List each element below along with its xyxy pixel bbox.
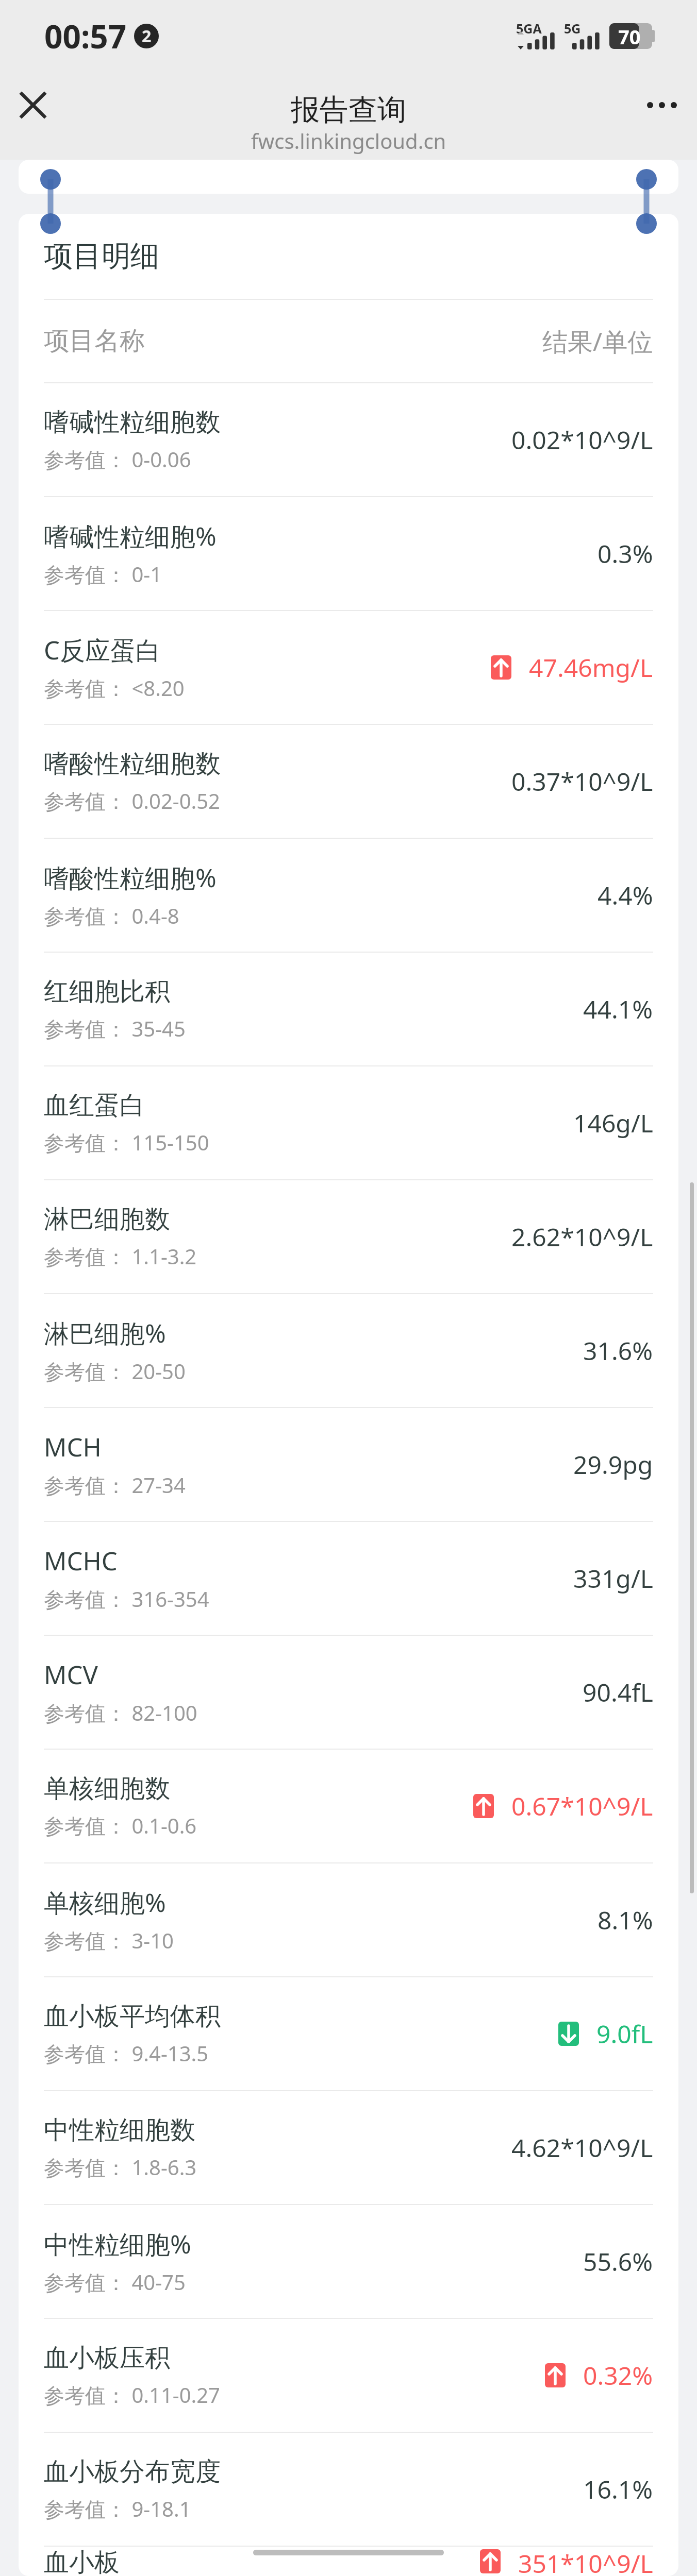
- staticText: 淋巴细胞%: [44, 1316, 166, 1350]
- button[interactable]: Close: [9, 81, 57, 129]
- staticText: 参考值： 1.8-6.3: [44, 2153, 197, 2181]
- staticText: fwcs.linkingcloud.cn: [251, 127, 446, 155]
- staticText: 中性粒细胞%: [44, 2227, 191, 2261]
- staticText: 中性粒细胞数: [44, 2114, 195, 2146]
- staticText: 参考值： 115-150: [44, 1128, 209, 1157]
- button[interactable]: More options: [638, 81, 686, 129]
- staticText: 0.32%: [583, 2359, 653, 2392]
- staticText: 血小板平均体积: [44, 2001, 221, 2032]
- staticText: 2.62*10^9/L: [511, 1220, 653, 1253]
- staticText: 报告查询: [291, 92, 406, 128]
- staticText: 嗜碱性粒细胞%: [44, 519, 217, 553]
- staticText: 31.6%: [583, 1334, 653, 1367]
- staticText: 参考值： 1.1-3.2: [44, 1242, 197, 1270]
- staticText: 参考值： 35-45: [44, 1014, 186, 1043]
- button[interactable]: 血小板: [19, 2547, 678, 2576]
- staticText: 0.3%: [598, 537, 653, 570]
- staticText: 4.62*10^9/L: [511, 2131, 653, 2164]
- staticText: 5GA: [516, 20, 542, 37]
- staticText: 参考值： 20-50: [44, 1357, 186, 1385]
- staticText: 0.67*10^9/L: [511, 1789, 653, 1823]
- button[interactable]: 中性粒细胞%: [19, 2205, 678, 2318]
- staticText: 00:57: [44, 14, 127, 58]
- staticText: 55.6%: [583, 2245, 653, 2278]
- staticText: MCHC: [44, 1544, 118, 1578]
- button[interactable]: 单核细胞数: [19, 1750, 678, 1862]
- staticText: 16.1%: [583, 2472, 653, 2506]
- button[interactable]: 血小板平均体积: [19, 1977, 678, 2090]
- staticText: 44.1%: [583, 992, 653, 1026]
- staticText: 0.37*10^9/L: [511, 765, 653, 798]
- staticText: 351*10^9/L: [518, 2547, 653, 2576]
- button[interactable]: 嗜碱性粒细胞%: [19, 497, 678, 610]
- button[interactable]: 红细胞比积: [19, 953, 678, 1065]
- staticText: 参考值： 82-100: [44, 1699, 197, 1727]
- staticText: C反应蛋白: [44, 633, 161, 667]
- staticText: 8.1%: [598, 1903, 653, 1937]
- button[interactable]: 血小板分布宽度: [19, 2433, 678, 2546]
- staticText: 70: [618, 23, 641, 49]
- staticText: 参考值： 3-10: [44, 1926, 174, 1955]
- button[interactable]: 嗜酸性粒细胞%: [19, 839, 678, 952]
- button[interactable]: 淋巴细胞%: [19, 1294, 678, 1407]
- staticText: 参考值： 0.11-0.27: [44, 2381, 220, 2409]
- staticText: 参考值： 0-1: [44, 560, 162, 588]
- staticText: 嗜酸性粒细胞数: [44, 748, 221, 780]
- staticText: 红细胞比积: [44, 976, 170, 1008]
- staticText: 项目名称: [44, 325, 145, 357]
- staticText: 项目明细: [44, 238, 159, 275]
- staticText: 9.0fL: [596, 2017, 653, 2050]
- button[interactable]: 嗜碱性粒细胞数: [19, 383, 678, 496]
- staticText: 5G: [564, 20, 581, 37]
- staticText: 0.02*10^9/L: [511, 423, 653, 456]
- staticText: 参考值： 9-18.1: [44, 2495, 191, 2523]
- staticText: 47.46mg/L: [529, 651, 653, 684]
- staticText: 结果/单位: [542, 324, 653, 359]
- button[interactable]: 中性粒细胞数: [19, 2091, 678, 2204]
- staticText: MCV: [44, 1657, 98, 1692]
- staticText: 单核细胞数: [44, 1773, 170, 1805]
- button[interactable]: 血红蛋白: [19, 1066, 678, 1179]
- staticText: 嗜碱性粒细胞数: [44, 406, 221, 438]
- staticText: 淋巴细胞数: [44, 1204, 170, 1235]
- staticText: 血小板: [44, 2547, 120, 2576]
- staticText: 29.9pg: [573, 1448, 653, 1481]
- button[interactable]: 淋巴细胞数: [19, 1180, 678, 1293]
- button[interactable]: 嗜酸性粒细胞数: [19, 725, 678, 838]
- staticText: 331g/L: [573, 1562, 653, 1595]
- staticText: 单核细胞%: [44, 1885, 166, 1920]
- staticText: MCH: [44, 1430, 102, 1464]
- staticText: 参考值： 0.02-0.52: [44, 787, 220, 815]
- staticText: 参考值： 0.1-0.6: [44, 1811, 197, 1840]
- staticText: 嗜酸性粒细胞%: [44, 860, 217, 895]
- staticText: 参考值： 9.4-13.5: [44, 2039, 209, 2067]
- button[interactable]: MCH: [19, 1408, 678, 1521]
- button[interactable]: 血小板压积: [19, 2319, 678, 2432]
- staticText: 血红蛋白: [44, 1090, 145, 1122]
- staticText: 参考值： <8.20: [44, 674, 185, 702]
- staticText: 参考值： 316-354: [44, 1585, 209, 1613]
- button[interactable]: MCHC: [19, 1522, 678, 1635]
- staticText: 血小板分布宽度: [44, 2456, 221, 2488]
- staticText: 90.4fL: [583, 1675, 653, 1709]
- staticText: 参考值： 0-0.06: [44, 445, 191, 473]
- staticText: 参考值： 0.4-8: [44, 902, 179, 930]
- button[interactable]: 单核细胞%: [19, 1863, 678, 1976]
- button[interactable]: MCV: [19, 1636, 678, 1749]
- staticText: 血小板压积: [44, 2342, 170, 2374]
- staticText: 2: [142, 25, 152, 47]
- staticText: 146g/L: [573, 1106, 653, 1140]
- staticText: 4.4%: [598, 878, 653, 912]
- button[interactable]: C反应蛋白: [19, 611, 678, 724]
- staticText: 参考值： 40-75: [44, 2268, 186, 2296]
- staticText: 参考值： 27-34: [44, 1471, 186, 1499]
